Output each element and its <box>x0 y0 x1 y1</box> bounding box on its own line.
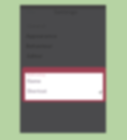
staticText: Name <box>27 78 41 84</box>
button[interactable]: Name <box>27 78 41 84</box>
staticText: Add entry <box>27 72 46 77</box>
button[interactable]: Shortcut <box>27 88 47 94</box>
staticText: Editor <box>27 52 43 59</box>
button[interactable]: Editor <box>27 52 43 59</box>
staticText: Behaviour <box>26 42 53 49</box>
button[interactable]: Behaviour <box>26 42 53 49</box>
staticText: Appearance <box>26 32 57 39</box>
other: Pointer <box>98 90 103 95</box>
button[interactable]: Appearance <box>26 32 57 39</box>
staticText: Shortcut <box>27 88 47 94</box>
